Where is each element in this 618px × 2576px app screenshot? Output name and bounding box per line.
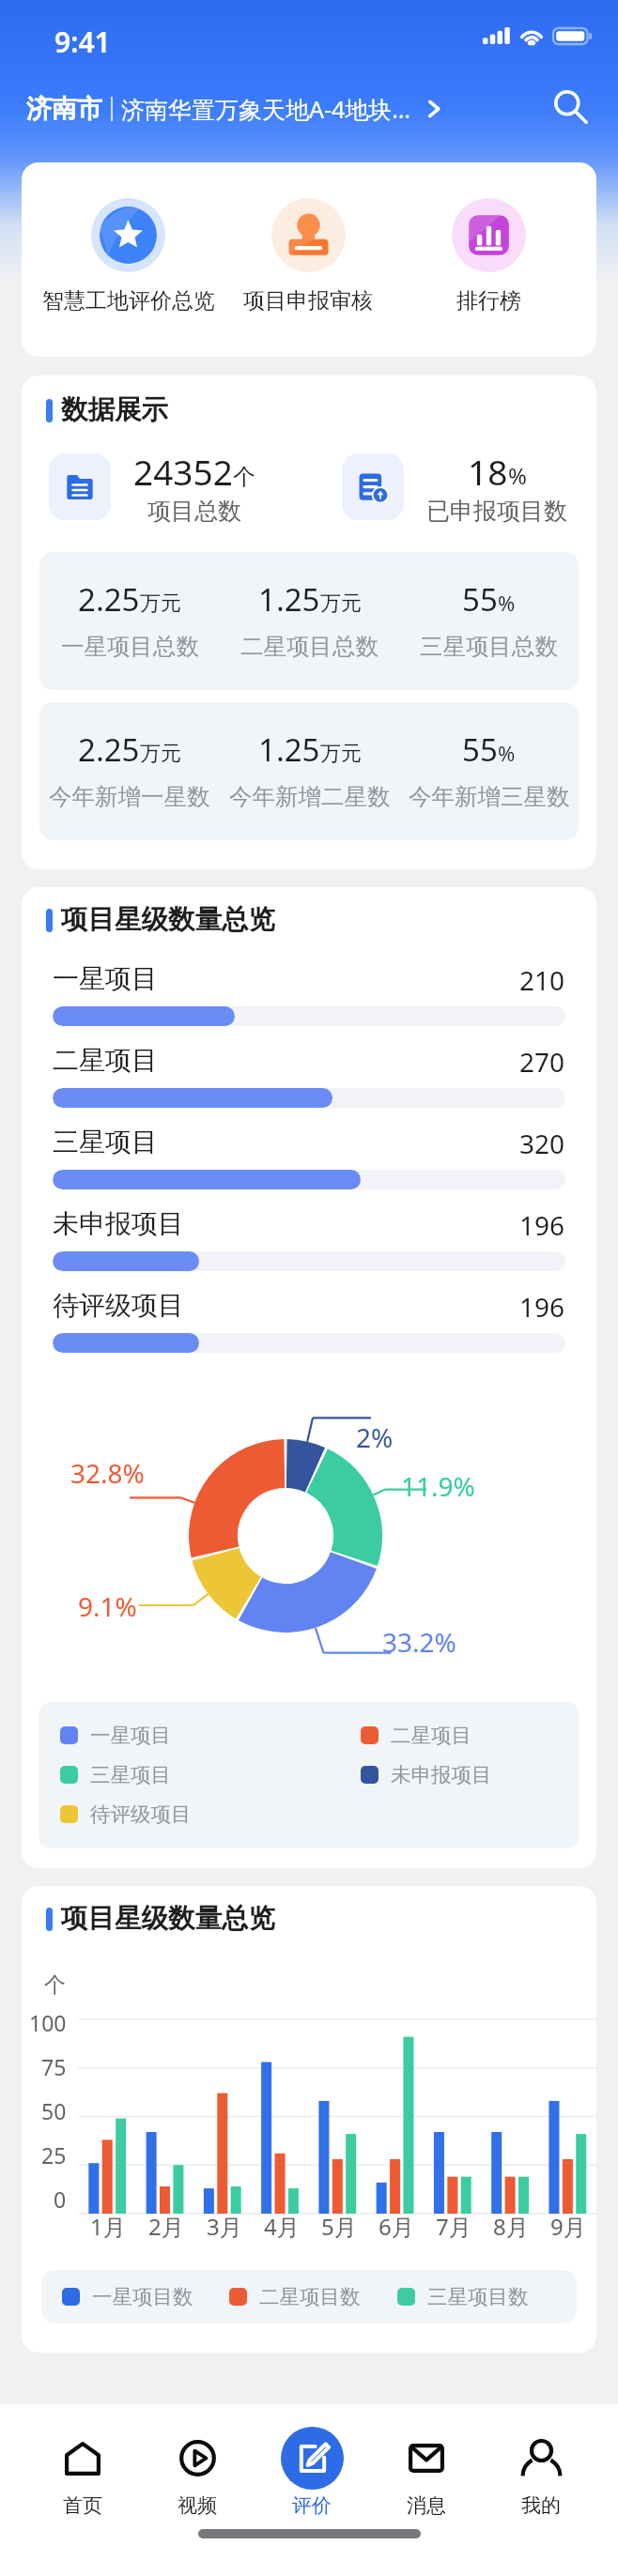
- staticText: 消息: [407, 2493, 446, 2518]
- other: Profile: [523, 2439, 560, 2476]
- staticText: 2.25: [78, 728, 140, 771]
- staticText: 75: [41, 2052, 67, 2081]
- staticText: 万元: [140, 590, 181, 617]
- staticText: %: [508, 460, 527, 491]
- staticText: 待评级项目: [53, 1289, 184, 1322]
- staticText: 济南市: [26, 93, 102, 125]
- staticText: 32.8%: [70, 1455, 145, 1491]
- other: Evaluate: [281, 2427, 344, 2490]
- staticText: 个: [233, 463, 255, 491]
- staticText: 未申报项目: [53, 1207, 184, 1240]
- staticText: 二星项目: [53, 1044, 158, 1077]
- staticText: 11.9%: [401, 1468, 475, 1504]
- staticText: 待评级项目: [90, 1802, 192, 1827]
- staticText: 8月: [493, 2211, 529, 2242]
- staticText: 9.1%: [78, 1588, 137, 1624]
- staticText: 18: [468, 448, 508, 495]
- staticText: 6月: [379, 2211, 414, 2242]
- staticText: 1.25: [258, 728, 320, 771]
- staticText: 一星项目: [53, 962, 158, 995]
- staticText: 270: [519, 1044, 565, 1080]
- staticText: 三星项目: [53, 1126, 158, 1158]
- other: Messages: [409, 2444, 444, 2473]
- staticText: 二星项目总数: [240, 632, 379, 661]
- staticText: 项目申报审核: [243, 287, 373, 314]
- other: Home: [65, 2441, 100, 2476]
- staticText: 今年新增二星数: [229, 782, 391, 811]
- staticText: 个: [44, 1971, 66, 1999]
- staticText: 二星项目数: [259, 2284, 361, 2309]
- staticText: 一星项目数: [92, 2284, 193, 2309]
- staticText: 万元: [320, 590, 362, 617]
- staticText: 25: [41, 2140, 67, 2170]
- staticText: 196: [519, 1207, 565, 1243]
- staticText: 首页: [63, 2493, 102, 2518]
- staticText: 2月: [148, 2211, 184, 2242]
- staticText: 50: [41, 2096, 67, 2125]
- staticText: 55: [462, 728, 498, 771]
- button[interactable]: 项目申报审核: [218, 198, 398, 314]
- staticText: 未申报项目: [391, 1762, 492, 1787]
- staticText: 三星项目数: [427, 2284, 529, 2309]
- staticText: 0: [54, 2185, 67, 2214]
- button[interactable]: Evaluate: [255, 2404, 369, 2538]
- button[interactable]: Messages: [369, 2404, 484, 2538]
- staticText: 万元: [320, 741, 362, 767]
- staticText: 33.2%: [382, 1624, 456, 1660]
- staticText: 项目星级数量总览: [61, 1902, 275, 1936]
- staticText: 数据展示: [61, 393, 168, 427]
- staticText: 7月: [436, 2211, 471, 2242]
- staticText: 排行榜: [456, 287, 521, 314]
- button[interactable]: Home: [25, 2404, 140, 2538]
- staticText: 项目星级数量总览: [61, 903, 275, 937]
- staticText: 210: [519, 962, 565, 998]
- staticText: 100: [29, 2008, 67, 2037]
- staticText: 5月: [321, 2211, 357, 2242]
- staticText: 320: [519, 1126, 565, 1161]
- staticText: 4月: [264, 2211, 300, 2242]
- staticText: 196: [519, 1289, 565, 1325]
- staticText: 3月: [207, 2211, 242, 2242]
- staticText: %: [498, 739, 516, 767]
- staticText: 一星项目总数: [61, 632, 199, 661]
- staticText: 视频: [178, 2493, 217, 2518]
- button[interactable]: 济南市: [26, 93, 545, 125]
- staticText: 项目总数: [147, 497, 241, 526]
- staticText: 已申报项目数: [426, 497, 567, 526]
- staticText: 1月: [90, 2211, 126, 2242]
- button[interactable]: 智慧工地评价总览: [39, 198, 218, 314]
- staticText: 今年新增一星数: [49, 782, 210, 811]
- staticText: 今年新增三星数: [409, 782, 570, 811]
- staticText: 济南华置万象天地A-4地块…: [121, 93, 411, 125]
- staticText: 9月: [550, 2211, 586, 2242]
- button[interactable]: Profile: [484, 2404, 598, 2538]
- staticText: 二星项目: [391, 1723, 471, 1748]
- staticText: 三星项目总数: [420, 632, 558, 661]
- button[interactable]: Video: [140, 2404, 255, 2538]
- button[interactable]: Search: [545, 81, 595, 131]
- other: Video: [179, 2440, 216, 2476]
- staticText: 1.25: [258, 578, 320, 621]
- staticText: 24352: [133, 448, 233, 495]
- staticText: 我的: [521, 2493, 561, 2518]
- staticText: 一星项目: [90, 1723, 171, 1748]
- staticText: 2.25: [78, 578, 140, 621]
- staticText: 2%: [356, 1419, 394, 1455]
- staticText: 评价: [292, 2493, 332, 2518]
- staticText: 万元: [140, 741, 181, 767]
- button[interactable]: 排行榜: [398, 198, 579, 314]
- staticText: 智慧工地评价总览: [42, 287, 215, 314]
- staticText: 三星项目: [90, 1762, 171, 1787]
- staticText: 55: [462, 578, 498, 621]
- staticText: 9:41: [54, 23, 111, 61]
- staticText: %: [498, 589, 516, 617]
